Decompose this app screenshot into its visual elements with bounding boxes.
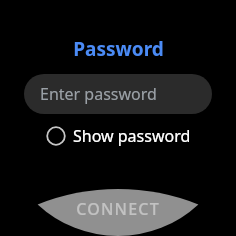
- staticText: Enter password: [40, 83, 157, 105]
- other: Show password checkbox: [46, 126, 66, 146]
- staticText: Show password: [73, 125, 191, 147]
- staticText: Password: [73, 36, 164, 62]
- staticText: CONNECT: [76, 198, 160, 220]
- button[interactable]: CONNECT: [0, 180, 236, 236]
- button[interactable]: Enter password: [24, 74, 212, 114]
- button[interactable]: Show password checkbox: [40, 122, 197, 150]
